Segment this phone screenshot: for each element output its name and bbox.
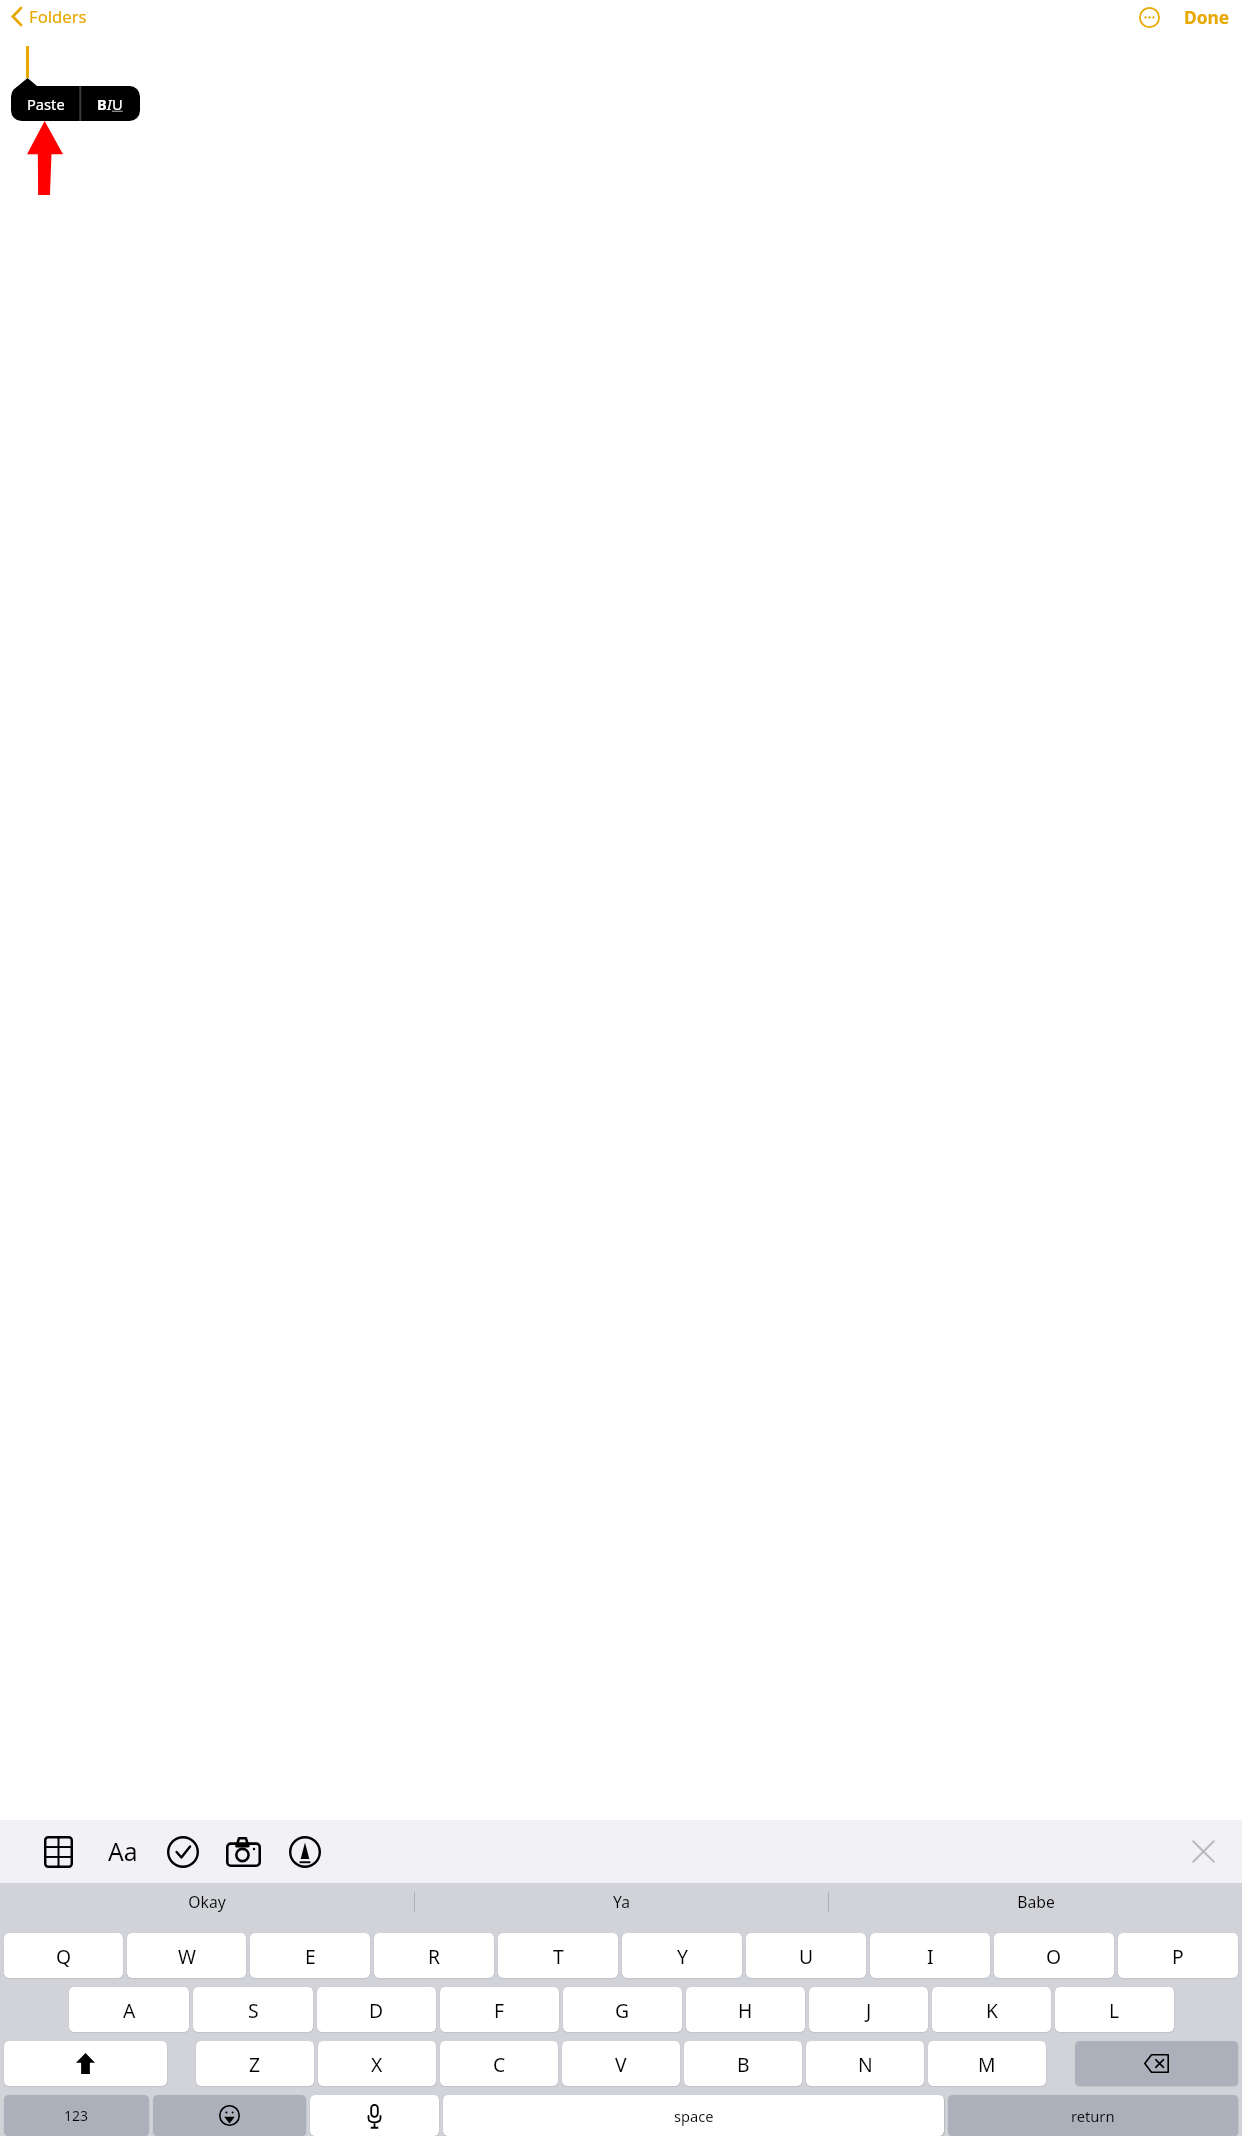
staticText: Aa (108, 1835, 138, 1869)
button[interactable]: M (928, 2041, 1046, 2086)
staticText: U (799, 1943, 814, 1969)
staticText: J (866, 1997, 872, 2023)
button[interactable]: H (686, 1987, 805, 2032)
button[interactable]: Text format (103, 1832, 142, 1871)
button[interactable]: J (809, 1987, 928, 2032)
staticText: Babe (1017, 1891, 1055, 1912)
button[interactable]: Backspace (1075, 2041, 1238, 2086)
button[interactable]: B (684, 2041, 802, 2086)
button[interactable]: W (127, 1933, 246, 1978)
button[interactable]: Numbers (4, 2095, 149, 2136)
staticText: E (305, 1943, 316, 1969)
staticText: space (674, 2106, 714, 2126)
button[interactable]: Babe (829, 1883, 1242, 1920)
button[interactable]: P (1118, 1933, 1238, 1978)
staticText: I (927, 1943, 934, 1969)
button[interactable]: A (69, 1987, 189, 2032)
button[interactable]: R (374, 1933, 494, 1978)
button[interactable]: Markup (285, 1832, 324, 1871)
button[interactable]: G (563, 1987, 682, 2032)
button[interactable]: U (746, 1933, 866, 1978)
button[interactable]: Table (39, 1832, 78, 1871)
staticText: I (107, 94, 112, 114)
staticText: 123 (64, 2106, 89, 2125)
button[interactable]: More options (1136, 4, 1163, 31)
staticText: Okay (188, 1891, 226, 1912)
staticText: W (178, 1943, 196, 1969)
button[interactable]: S (193, 1987, 313, 2032)
button[interactable]: Close (1184, 1832, 1223, 1871)
staticText: B (737, 2051, 750, 2077)
button[interactable]: Done (1182, 2, 1232, 32)
button[interactable]: D (317, 1987, 436, 2032)
staticText: X (371, 2051, 383, 2077)
button[interactable]: X (318, 2041, 436, 2086)
staticText: O (1046, 1943, 1062, 1969)
button[interactable]: Z (196, 2041, 314, 2086)
button[interactable]: K (932, 1987, 1051, 2032)
button[interactable]: Shift (4, 2041, 167, 2086)
staticText: A (123, 1997, 136, 2023)
button[interactable]: Paste (11, 78, 80, 121)
staticText: P (1172, 1943, 1184, 1969)
staticText: Paste (27, 94, 65, 114)
staticText: Done (1184, 5, 1230, 29)
staticText: F (494, 1997, 505, 2023)
button[interactable]: Camera (224, 1832, 263, 1871)
button[interactable]: Okay (0, 1883, 414, 1920)
button[interactable]: Folders (7, 2, 90, 31)
staticText: M (978, 2051, 996, 2077)
button[interactable]: L (1055, 1987, 1174, 2032)
button[interactable]: return (948, 2095, 1238, 2136)
button[interactable]: Y (622, 1933, 742, 1978)
button[interactable]: B (80, 78, 140, 121)
button[interactable]: Emoji (153, 2095, 306, 2136)
staticText: C (493, 2051, 506, 2077)
staticText: K (986, 1997, 998, 2023)
button[interactable]: Checklist (163, 1832, 202, 1871)
button[interactable]: Ya (415, 1883, 828, 1920)
staticText: Q (56, 1943, 72, 1969)
button[interactable]: T (498, 1933, 618, 1978)
button[interactable]: V (562, 2041, 680, 2086)
staticText: R (428, 1943, 441, 1969)
staticText: N (858, 2051, 873, 2077)
button[interactable]: space (443, 2095, 944, 2136)
staticText: Y (677, 1943, 688, 1969)
staticText: return (1071, 2106, 1115, 2126)
staticText: L (1109, 1997, 1120, 2023)
button[interactable]: Dictation (310, 2095, 439, 2136)
staticText: U (112, 94, 123, 114)
staticText: H (738, 1997, 753, 2023)
staticText: Folders (29, 5, 87, 28)
button[interactable]: N (806, 2041, 924, 2086)
staticText: T (553, 1943, 564, 1969)
staticText: V (615, 2051, 627, 2077)
button[interactable]: Q (4, 1933, 123, 1978)
staticText: Z (249, 2051, 261, 2077)
button[interactable]: E (250, 1933, 370, 1978)
staticText: S (248, 1997, 259, 2023)
staticText: B (97, 94, 107, 114)
staticText: Ya (613, 1891, 630, 1912)
staticText: G (615, 1997, 630, 2023)
button[interactable]: C (440, 2041, 558, 2086)
button[interactable]: O (994, 1933, 1114, 1978)
button[interactable]: I (870, 1933, 990, 1978)
staticText: D (369, 1997, 384, 2023)
button[interactable]: F (440, 1987, 559, 2032)
